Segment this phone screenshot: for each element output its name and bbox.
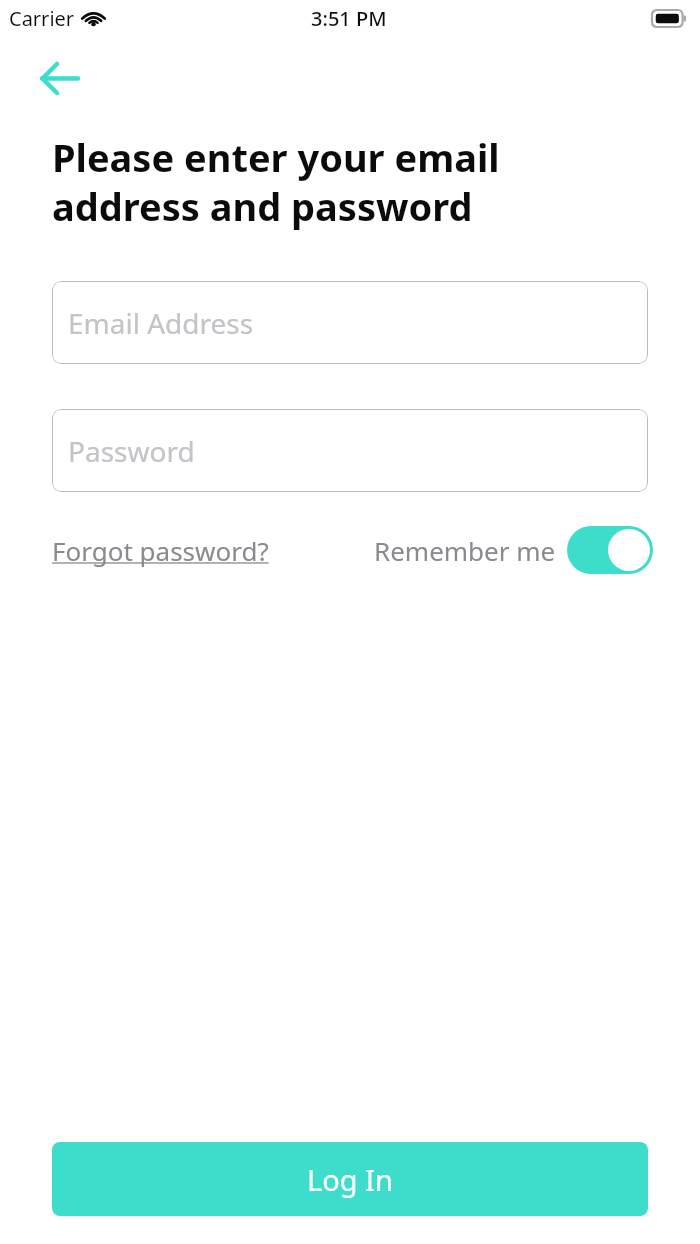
staticText: Log In (307, 1160, 393, 1199)
button[interactable]: Log In (52, 1142, 648, 1216)
button[interactable]: Remember me (374, 526, 653, 574)
staticText: Forgot password? (52, 533, 269, 568)
staticText: Please enter your email address and pass… (52, 131, 500, 232)
button[interactable]: Password (52, 409, 648, 492)
button[interactable]: Back (34, 52, 86, 104)
button[interactable]: Email Address (52, 281, 648, 364)
staticText: Remember me (374, 533, 556, 568)
button[interactable]: Forgot password? (52, 533, 269, 568)
staticText: Carrier (9, 5, 75, 32)
staticText: Email Address (68, 304, 254, 342)
staticText: 3:51 PM (311, 5, 387, 32)
button[interactable]: Remember me toggle (567, 526, 653, 574)
staticText: Password (68, 432, 195, 470)
